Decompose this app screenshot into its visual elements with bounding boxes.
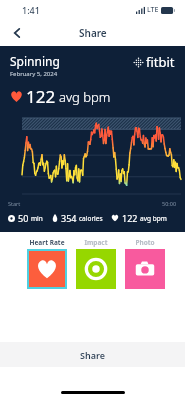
staticText: February 5, 2024 [10,70,58,78]
staticText: min [31,214,43,223]
button[interactable]: Heart Rate [27,238,67,289]
staticText: 354 [61,212,77,224]
staticText: 122 [122,212,138,224]
button[interactable]: Share [0,342,185,367]
staticText: Spinning [10,53,60,69]
button[interactable]: Impact [76,238,116,289]
button[interactable]: Photo [125,238,165,289]
staticText: Heart Rate [29,238,65,247]
staticText: Share [80,349,105,361]
staticText: calories [79,214,103,223]
staticText: LTE [147,5,159,15]
staticText: Photo [135,238,155,247]
staticText: Start [8,200,21,207]
staticText: avg bpm [140,214,167,223]
staticText: avg bpm [59,88,111,106]
button[interactable]: Back [4,20,30,46]
staticText: 50:00 [162,200,177,207]
staticText: 122 [26,85,56,108]
staticText: fitbit [146,53,175,71]
staticText: Share [79,26,107,40]
staticText: 1:41 [22,4,40,16]
staticText: 50 [18,212,29,224]
staticText: Impact [84,238,108,247]
